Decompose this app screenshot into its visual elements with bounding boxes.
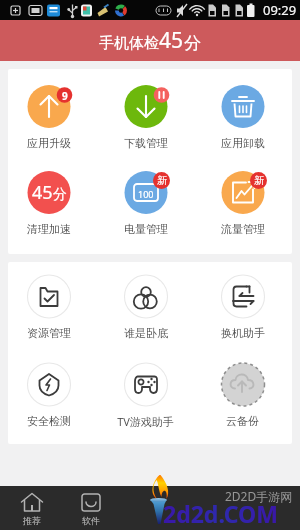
staticText: 9 <box>62 89 68 103</box>
staticText: 手机体检 <box>99 34 159 53</box>
staticText: 分 <box>53 186 67 204</box>
button[interactable]: 45 <box>0 171 97 236</box>
button[interactable]: 推荐 <box>2 486 61 530</box>
staticText: 谁是卧底 <box>124 326 168 340</box>
button[interactable]: 谁是卧底 <box>97 275 194 340</box>
staticText: 2D2D手游网 <box>225 488 293 504</box>
button[interactable]: 100 <box>97 171 194 236</box>
staticText: 清理加速 <box>27 222 71 236</box>
staticText: 电量管理 <box>124 222 168 236</box>
staticText: 09:29 <box>263 1 297 19</box>
staticText: 资源管理 <box>27 326 71 340</box>
staticText: 流量管理 <box>221 222 265 236</box>
button[interactable]: 应用卸载 <box>194 85 291 150</box>
button[interactable]: TV游戏助手 <box>97 363 194 429</box>
button[interactable]: 安全检测 <box>0 363 97 428</box>
button[interactable]: 软件 <box>61 486 120 530</box>
staticText: 45 <box>159 26 184 55</box>
staticText: TV游戏助手 <box>117 414 174 429</box>
staticText: 新 <box>157 174 167 187</box>
staticText: 100 <box>138 188 154 200</box>
button[interactable]: 云备份 <box>194 363 291 428</box>
staticText: 2d2d.COM <box>163 498 278 529</box>
button[interactable]: 手机体检 <box>0 20 300 61</box>
button[interactable]: 新 <box>194 171 291 236</box>
staticText: 45 <box>32 180 53 205</box>
staticText: 分 <box>184 33 201 54</box>
staticText: 云备份 <box>226 414 259 428</box>
button[interactable]: 换机助手 <box>194 275 291 340</box>
staticText: 安全检测 <box>27 414 71 428</box>
staticText: 下载管理 <box>124 136 168 150</box>
staticText: 新 <box>254 174 264 187</box>
staticText: 应用升级 <box>27 136 71 150</box>
button[interactable]: 资源管理 <box>0 275 97 340</box>
staticText: 推荐 <box>23 515 41 526</box>
staticText: 软件 <box>82 515 100 526</box>
staticText: 应用卸载 <box>221 136 265 150</box>
staticText: 换机助手 <box>221 326 265 340</box>
button[interactable]: 下载管理 <box>97 85 194 150</box>
button[interactable]: 9 <box>0 85 97 150</box>
